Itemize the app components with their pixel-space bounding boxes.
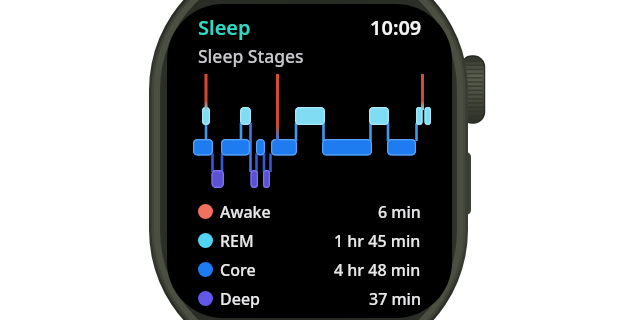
staticText: Awake xyxy=(220,201,271,221)
button[interactable]: REM xyxy=(198,230,421,250)
staticText: 1 hr 45 min xyxy=(334,230,421,250)
staticText: 10:09 xyxy=(370,14,422,41)
staticText: 6 min xyxy=(378,201,421,221)
staticText: 4 hr 48 min xyxy=(334,259,421,279)
staticText: 37 min xyxy=(369,288,421,308)
button[interactable]: Awake xyxy=(198,201,421,221)
staticText: REM xyxy=(220,230,254,250)
staticText: Sleep Stages xyxy=(198,44,304,68)
staticText: Core xyxy=(220,259,256,279)
staticText: Deep xyxy=(220,288,260,308)
button[interactable]: Deep xyxy=(198,288,421,308)
button[interactable]: Sleep xyxy=(198,14,251,41)
button[interactable]: Core xyxy=(198,259,421,279)
